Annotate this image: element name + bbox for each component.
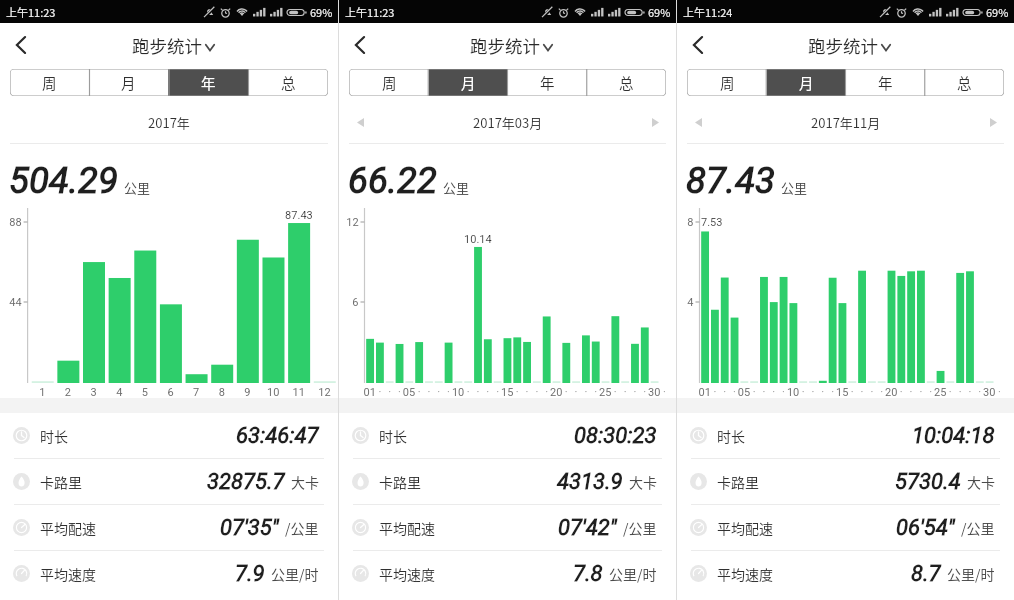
staticText: 上午11:23 <box>345 4 395 20</box>
button[interactable]: 总 <box>248 69 328 96</box>
staticText: 平均速度 <box>379 564 435 584</box>
button[interactable]: 平均速度 <box>677 551 1014 596</box>
staticText: /公里 <box>623 518 657 538</box>
button[interactable]: 卡路里 <box>677 459 1014 504</box>
staticText: 公里/时 <box>947 564 995 584</box>
button[interactable]: 平均速度 <box>339 551 676 596</box>
button[interactable]: 年 <box>168 69 248 96</box>
button[interactable]: 跑步统计 <box>126 28 221 63</box>
staticText: 年 <box>878 72 893 93</box>
button[interactable]: Back <box>677 23 719 67</box>
staticText: 32875.7 <box>207 469 285 495</box>
staticText: 公里/时 <box>271 564 319 584</box>
button[interactable]: Previous period <box>687 111 709 133</box>
staticText: 7.9 <box>235 561 265 587</box>
staticText: 平均速度 <box>717 564 773 584</box>
staticText: 年 <box>540 72 555 93</box>
staticText: 周 <box>720 72 735 93</box>
button[interactable]: 时长 <box>0 413 338 458</box>
staticText: 公里/时 <box>609 564 657 584</box>
staticText: 跑步统计 <box>132 33 202 58</box>
staticText: 总 <box>619 72 634 93</box>
button[interactable]: 时长 <box>339 413 676 458</box>
staticText: 2017年03月 <box>473 113 543 132</box>
button[interactable]: Next period <box>644 111 666 133</box>
button[interactable]: 平均配速 <box>339 505 676 550</box>
staticText: 年 <box>201 72 216 93</box>
button[interactable]: 周 <box>687 69 767 96</box>
staticText: 大卡 <box>629 472 657 492</box>
staticText: 上午11:24 <box>683 4 733 20</box>
staticText: 总 <box>957 72 972 93</box>
button[interactable]: 跑步统计 <box>464 28 559 63</box>
button[interactable]: 卡路里 <box>0 459 338 504</box>
staticText: 5730.4 <box>895 469 961 495</box>
button[interactable]: Back <box>0 23 42 67</box>
staticText: 8.7 <box>911 561 941 587</box>
staticText: 公里 <box>443 178 470 197</box>
staticText: 504.29 <box>9 159 118 200</box>
staticText: 69% <box>648 4 671 20</box>
staticText: 69% <box>986 4 1009 20</box>
staticText: 06'54" <box>896 515 955 541</box>
staticText: 公里 <box>124 178 151 197</box>
button[interactable]: 周 <box>349 69 429 96</box>
staticText: 平均速度 <box>40 564 96 584</box>
staticText: 卡路里 <box>717 472 759 492</box>
staticText: 周 <box>382 72 397 93</box>
staticText: 66.22 <box>348 159 437 200</box>
button[interactable]: 卡路里 <box>339 459 676 504</box>
button[interactable]: 月 <box>429 69 508 96</box>
staticText: 时长 <box>40 426 68 446</box>
staticText: 大卡 <box>967 472 995 492</box>
staticText: 平均配速 <box>379 518 435 538</box>
staticText: 卡路里 <box>379 472 421 492</box>
button[interactable]: Next period <box>982 111 1004 133</box>
staticText: 07'42" <box>558 515 617 541</box>
staticText: 4313.9 <box>557 469 623 495</box>
button[interactable]: 平均速度 <box>0 551 338 596</box>
staticText: 07'35" <box>220 515 279 541</box>
staticText: 月 <box>461 72 476 93</box>
staticText: /公里 <box>961 518 995 538</box>
staticText: 卡路里 <box>40 472 82 492</box>
staticText: 周 <box>42 72 57 93</box>
staticText: 2017年11月 <box>811 113 881 132</box>
button[interactable]: Back <box>339 23 381 67</box>
button[interactable]: 时长 <box>677 413 1014 458</box>
button[interactable]: 跑步统计 <box>802 28 897 63</box>
button[interactable]: 周 <box>10 69 89 96</box>
staticText: 上午11:23 <box>6 4 56 20</box>
button[interactable]: 平均配速 <box>0 505 338 550</box>
staticText: 公里 <box>781 178 808 197</box>
button[interactable]: 月 <box>89 69 168 96</box>
staticText: 跑步统计 <box>808 33 878 58</box>
staticText: 63:46:47 <box>236 423 319 449</box>
staticText: 跑步统计 <box>470 33 540 58</box>
staticText: 平均配速 <box>40 518 96 538</box>
staticText: 时长 <box>717 426 745 446</box>
staticText: 7.8 <box>573 561 603 587</box>
staticText: 69% <box>310 4 333 20</box>
button[interactable]: 月 <box>767 69 846 96</box>
button[interactable]: Previous period <box>349 111 371 133</box>
staticText: 08:30:23 <box>574 423 657 449</box>
button[interactable]: 总 <box>925 69 1004 96</box>
staticText: 大卡 <box>291 472 319 492</box>
button[interactable]: 年 <box>846 69 925 96</box>
staticText: 月 <box>799 72 814 93</box>
staticText: 月 <box>121 72 136 93</box>
staticText: 10:04:18 <box>912 423 995 449</box>
staticText: 2017年 <box>148 113 190 132</box>
staticText: 87.43 <box>686 159 775 200</box>
staticText: 总 <box>281 72 296 93</box>
staticText: /公里 <box>285 518 319 538</box>
staticText: 时长 <box>379 426 407 446</box>
button[interactable]: 总 <box>587 69 666 96</box>
button[interactable]: 平均配速 <box>677 505 1014 550</box>
staticText: 平均配速 <box>717 518 773 538</box>
button[interactable]: 年 <box>508 69 587 96</box>
